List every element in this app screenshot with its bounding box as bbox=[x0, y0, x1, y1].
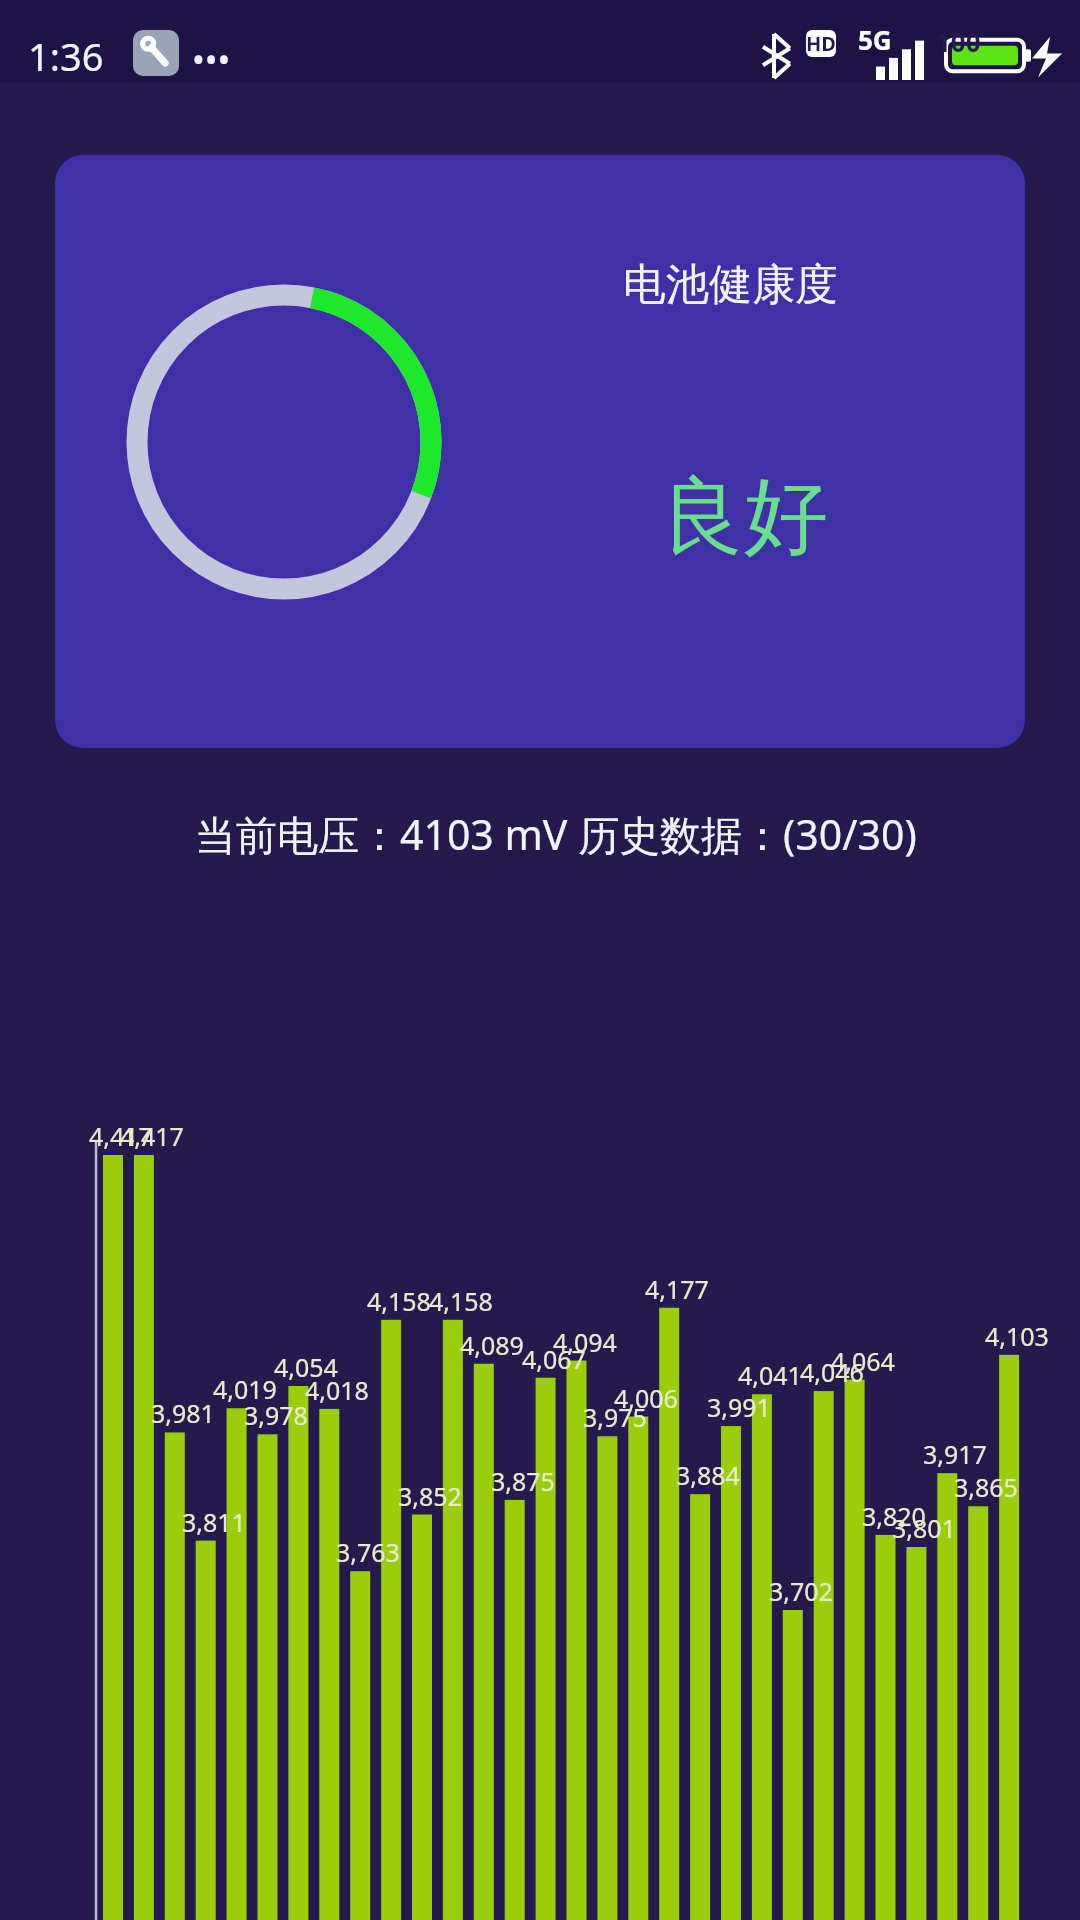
staticText: 4,417 bbox=[120, 1119, 184, 1153]
staticText: 4,089 bbox=[460, 1328, 524, 1362]
staticText: 3,865 bbox=[954, 1470, 1018, 1504]
staticText: 3,820 bbox=[862, 1499, 926, 1533]
staticText: 4,158 bbox=[429, 1284, 493, 1318]
staticText: 3,801 bbox=[892, 1511, 956, 1545]
staticText: 4,158 bbox=[367, 1284, 431, 1318]
staticText: 3,852 bbox=[398, 1479, 462, 1513]
staticText: 3,981 bbox=[151, 1396, 215, 1430]
staticText: 3,763 bbox=[336, 1535, 400, 1569]
staticText: 4,041 bbox=[738, 1358, 802, 1392]
staticText: 4,006 bbox=[614, 1381, 678, 1415]
staticText: 3,875 bbox=[491, 1464, 555, 1498]
other: Developer options bbox=[133, 30, 179, 76]
staticText: 3,991 bbox=[707, 1390, 771, 1424]
staticText: 3,884 bbox=[676, 1458, 740, 1492]
staticText: 4,177 bbox=[645, 1272, 709, 1306]
staticText: 4,417 bbox=[89, 1119, 153, 1153]
staticText: 4,103 bbox=[985, 1319, 1049, 1353]
staticText: 4,094 bbox=[553, 1325, 617, 1359]
staticText: 100 bbox=[936, 24, 981, 59]
staticText: 4,054 bbox=[274, 1350, 338, 1384]
staticText: ••• bbox=[192, 36, 231, 82]
staticText: 3,917 bbox=[923, 1437, 987, 1471]
staticText: 良好 bbox=[660, 464, 828, 570]
staticText: 4,064 bbox=[831, 1344, 895, 1378]
staticText: 5G bbox=[858, 22, 892, 57]
button[interactable]: 良好 bbox=[660, 464, 828, 570]
staticText: 4,019 bbox=[213, 1372, 277, 1406]
staticText: 3,702 bbox=[769, 1574, 833, 1608]
staticText: 电池健康度 bbox=[623, 258, 838, 312]
staticText: 3,978 bbox=[244, 1398, 308, 1432]
button[interactable]: 电池健康度 bbox=[623, 258, 838, 312]
staticText: 3,975 bbox=[583, 1400, 647, 1434]
staticText: 4,067 bbox=[522, 1342, 586, 1376]
staticText: HD bbox=[806, 30, 836, 57]
staticText: 3,811 bbox=[182, 1505, 246, 1539]
staticText: 4,018 bbox=[305, 1373, 369, 1407]
staticText: 当前电压：4103 mV 历史数据：(30/30) bbox=[195, 806, 917, 862]
staticText: 4,046 bbox=[800, 1355, 864, 1389]
staticText: 1:36 bbox=[28, 30, 104, 82]
